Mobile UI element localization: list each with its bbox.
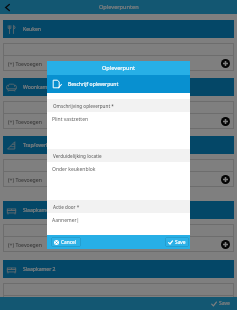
staticText: (+) Toevoegen — [8, 118, 42, 125]
staticText: Plint vastzetten — [52, 116, 89, 123]
button[interactable]: (+) Toevoegen — [3, 296, 234, 310]
staticText: Trap/overloop — [23, 142, 57, 149]
button[interactable]: Beschrijf opleverpunt — [47, 75, 190, 93]
staticText: Slaapkamer — [23, 207, 52, 214]
button[interactable]: Toevoegen — [221, 59, 230, 68]
staticText: Beschrijf opleverpunt — [68, 81, 119, 88]
staticText: (+) Toevoegen — [8, 176, 42, 183]
staticText: Onder keukenblok — [52, 166, 96, 173]
staticText: (+) Toevoegen — [8, 241, 42, 248]
staticText: Opleverpunten — [99, 3, 139, 11]
staticText: Keuken — [23, 26, 41, 33]
button[interactable]: Slaapkamer — [3, 201, 234, 219]
button[interactable]: Toevoegen — [221, 175, 230, 184]
button[interactable]: Save — [165, 237, 189, 247]
button[interactable]: (+) Toevoegen — [3, 114, 234, 129]
button[interactable]: Save — [211, 300, 230, 307]
button[interactable]: Back — [1, 1, 13, 13]
staticText: Save — [219, 300, 230, 307]
button[interactable]: Toevoegen — [221, 299, 230, 308]
button[interactable]: Trap/overloop — [3, 136, 234, 154]
staticText: Aannemer| — [52, 217, 80, 224]
button[interactable]: (+) Toevoegen — [3, 172, 234, 187]
staticText: Verduidelijking locatie — [53, 153, 102, 159]
button[interactable]: (+) Toevoegen — [3, 237, 234, 252]
staticText: Cancel — [61, 239, 76, 246]
button[interactable]: Toevoegen — [221, 240, 230, 249]
button[interactable]: Cancel — [51, 237, 81, 247]
staticText: Slaapkamer 2 — [23, 266, 56, 273]
staticText: Omschrijving opleverpunt * — [53, 103, 114, 109]
staticText: Actie door * — [53, 204, 80, 210]
staticText: (+) Toevoegen — [8, 60, 42, 67]
button[interactable]: Slaapkamer 2 — [3, 260, 234, 278]
button[interactable]: (+) Toevoegen — [3, 56, 234, 71]
staticText: Save — [175, 239, 186, 246]
staticText: Woonkamer — [23, 84, 53, 91]
button[interactable]: Woonkamer — [3, 78, 234, 96]
staticText: Opleverpunt — [102, 64, 135, 72]
button[interactable]: Keuken — [3, 20, 234, 38]
button[interactable]: Toevoegen — [221, 117, 230, 126]
